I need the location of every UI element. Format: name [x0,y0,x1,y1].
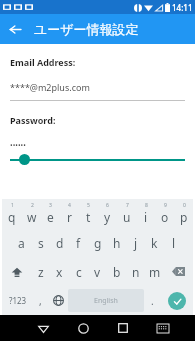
button[interactable]: 7 [117,199,136,228]
staticText: q [8,209,16,225]
button[interactable]: l [164,228,183,257]
button[interactable]: Recents [103,315,143,341]
staticText: n [132,264,140,280]
staticText: i [144,209,148,225]
staticText: 14:11 [172,2,193,13]
button[interactable]: s [31,228,50,257]
button[interactable]: 6 [98,199,117,228]
button[interactable]: x [50,257,69,286]
staticText: g [94,235,102,251]
button[interactable]: 3 [41,199,60,228]
button[interactable]: ****@m2plus.com [10,81,185,93]
button[interactable]: Backspace [164,257,193,286]
staticText: p [180,209,188,225]
staticText: 0 [183,202,186,209]
staticText: 9 [164,202,167,209]
staticText: 3 [49,202,52,209]
button[interactable]: h [107,228,126,257]
staticText: . [151,294,154,308]
staticText: 7 [126,202,129,209]
button[interactable]: v [88,257,107,286]
staticText: 5 [87,202,90,209]
staticText: Email Address: [10,56,76,68]
staticText: , [39,294,42,308]
button[interactable]: Home [63,315,103,341]
staticText: w [27,209,37,225]
staticText: 8 [145,202,148,209]
button[interactable]: Done [160,286,193,315]
staticText: ****@m2plus.com [10,81,90,93]
button[interactable]: k [145,228,164,257]
button[interactable]: f [69,228,88,257]
button[interactable]: z [31,257,50,286]
staticText: h [113,235,121,251]
button[interactable]: g [88,228,107,257]
button[interactable]: a [12,228,31,257]
staticText: •••••• [10,141,26,151]
staticText: x [56,264,63,280]
button[interactable]: . [144,286,160,315]
staticText: 4 [68,202,71,209]
button[interactable]: m [145,257,164,286]
button[interactable]: ?123 [2,286,33,315]
button[interactable]: English [68,289,144,312]
staticText: 2 [31,202,34,209]
staticText: y [104,209,111,225]
staticText: b [113,264,121,280]
button[interactable]: n [126,257,145,286]
staticText: a [18,235,25,251]
button[interactable]: , [33,286,48,315]
staticText: ?123 [9,295,27,306]
staticText: k [151,235,158,251]
staticText: r [67,209,72,225]
staticText: c [76,264,82,280]
button[interactable]: Shift [2,257,31,286]
button[interactable]: 9 [155,199,174,228]
button[interactable]: j [126,228,145,257]
button[interactable]: 4 [60,199,79,228]
button[interactable]: 5 [79,199,98,228]
staticText: 6 [106,202,109,209]
staticText: t [86,209,91,225]
staticText: ユーザー情報設定 [34,21,139,37]
button[interactable]: 2 [22,199,41,228]
staticText: v [94,264,101,280]
button[interactable]: c [69,257,88,286]
staticText: o [161,209,169,225]
button[interactable]: Back [0,14,30,44]
button[interactable]: •••••• [10,141,185,151]
staticText: l [172,235,176,251]
staticText: s [38,235,44,251]
staticText: Password: [10,114,56,126]
staticText: f [76,235,81,251]
staticText: 1 [11,202,14,209]
staticText: j [134,235,138,251]
staticText: u [123,209,131,225]
button[interactable]: 0 [174,199,193,228]
staticText: e [47,209,54,225]
button[interactable]: d [50,228,69,257]
button[interactable]: Back [23,315,63,341]
staticText: English [94,296,118,306]
button[interactable]: 1 [2,199,22,228]
button[interactable]: 8 [136,199,155,228]
button[interactable]: Switch keyboard [143,315,183,341]
staticText: z [38,264,44,280]
button[interactable]: Change language [48,286,68,315]
button[interactable]: b [107,257,126,286]
staticText: d [56,235,64,251]
staticText: m [149,264,161,280]
